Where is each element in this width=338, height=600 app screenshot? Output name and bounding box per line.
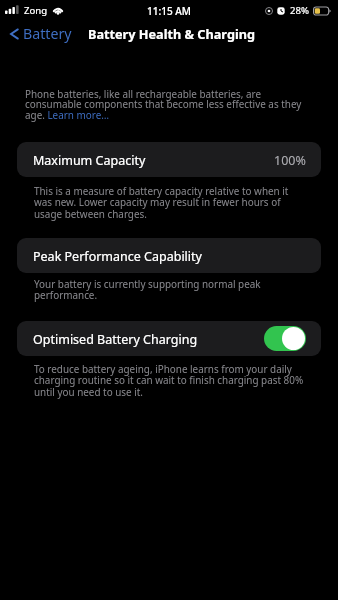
button[interactable]: Peak Performance Capability: [17, 238, 321, 273]
button[interactable]: Battery: [9, 24, 72, 43]
button[interactable]: Optimised Battery Charging: [17, 321, 321, 356]
staticText: Phone batteries, like all rechargeable b…: [25, 87, 305, 122]
staticText: Maximum Capacity: [33, 152, 146, 169]
button[interactable]: Maximum Capacity: [17, 142, 321, 177]
button[interactable]: Optimised Battery Charging toggle: [264, 326, 306, 351]
staticText: 11:15 AM: [147, 4, 191, 18]
staticText: 100%: [274, 152, 306, 169]
staticText: Battery: [23, 24, 72, 43]
staticText: Your battery is currently supporting nor…: [34, 277, 306, 302]
staticText: Optimised Battery Charging: [33, 331, 198, 348]
staticText: Zong: [24, 4, 48, 17]
staticText: 28%: [290, 4, 309, 17]
staticText: This is a measure of battery capacity re…: [34, 184, 306, 221]
staticText: Battery Health & Charging: [88, 25, 255, 42]
button[interactable]: Learn more: [47, 109, 109, 120]
staticText: Peak Performance Capability: [33, 248, 202, 265]
staticText: To reduce battery ageing, iPhone learns …: [34, 362, 306, 399]
